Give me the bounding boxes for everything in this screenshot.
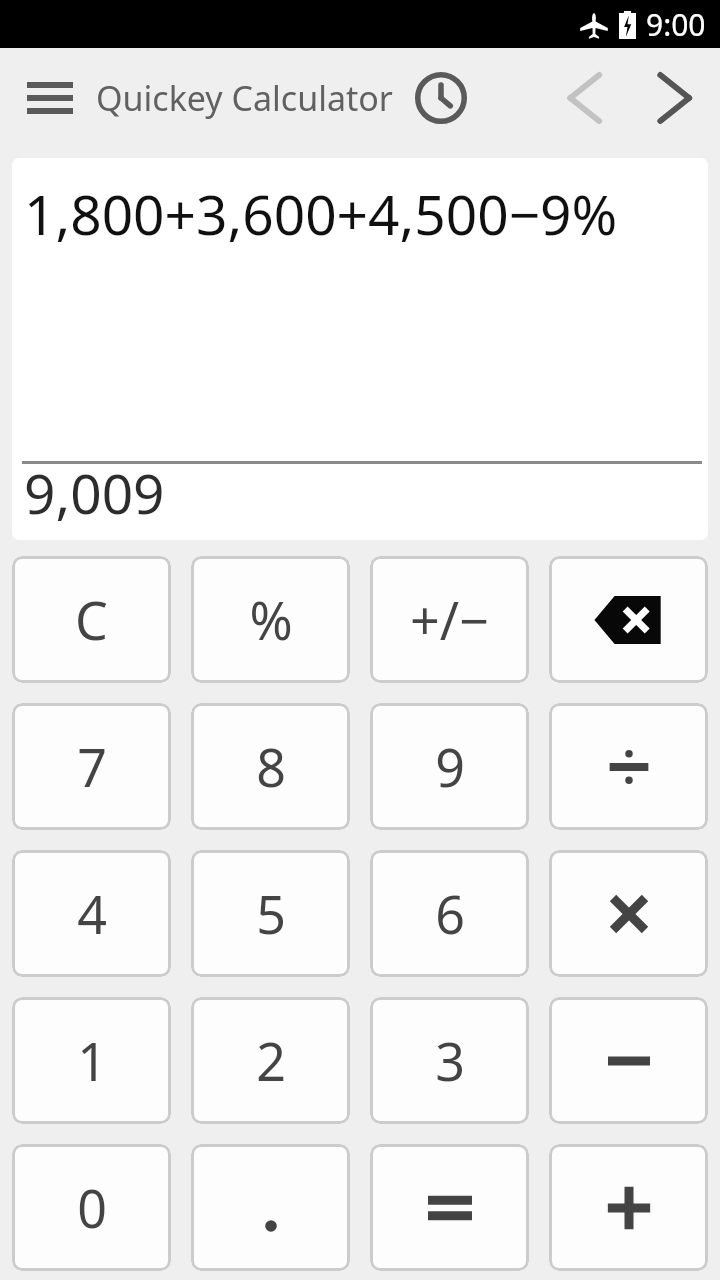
staticText: 5	[256, 878, 286, 949]
button[interactable]: +/−	[370, 556, 529, 683]
staticText: 1	[77, 1025, 107, 1096]
button[interactable]: 2	[191, 997, 350, 1124]
staticText: 4	[77, 878, 107, 949]
button[interactable]: %	[191, 556, 350, 683]
button[interactable]: Minus	[549, 997, 708, 1124]
staticText: 9:00	[646, 4, 706, 45]
button[interactable]: Multiply	[549, 850, 708, 977]
button[interactable]: 8	[191, 703, 350, 830]
staticText: 6	[435, 878, 465, 949]
button[interactable]: 7	[12, 703, 171, 830]
button[interactable]: Equals	[370, 1144, 529, 1271]
button[interactable]: 4	[12, 850, 171, 977]
staticText: 9	[435, 731, 465, 802]
button[interactable]: 1	[12, 997, 171, 1124]
button[interactable]: 5	[191, 850, 350, 977]
button[interactable]: 3	[370, 997, 529, 1124]
button[interactable]: 9	[370, 703, 529, 830]
staticText: 9,009	[24, 455, 165, 530]
button[interactable]: Backspace	[549, 556, 708, 683]
staticText: 1,800+3,600+4,500−9%	[24, 176, 618, 251]
staticText: 0	[77, 1172, 107, 1243]
button[interactable]: Previous	[540, 58, 628, 138]
button[interactable]: Divide	[549, 703, 708, 830]
button[interactable]: Plus	[549, 1144, 708, 1271]
staticText: 8	[256, 731, 286, 802]
button[interactable]: C	[12, 556, 171, 683]
button[interactable]: Open navigation menu	[18, 66, 82, 130]
staticText: 3	[435, 1025, 465, 1096]
button[interactable]: 0	[12, 1144, 171, 1271]
staticText: 2	[256, 1025, 286, 1096]
staticText: %	[249, 584, 293, 655]
staticText: +/−	[410, 584, 489, 655]
button[interactable]: Decimal point	[191, 1144, 350, 1271]
button[interactable]: 6	[370, 850, 529, 977]
staticText: 7	[77, 731, 107, 802]
staticText: C	[75, 584, 108, 655]
staticText: Quickey Calculator	[96, 75, 393, 121]
button[interactable]: Next	[628, 58, 720, 138]
button[interactable]: History	[411, 68, 471, 128]
